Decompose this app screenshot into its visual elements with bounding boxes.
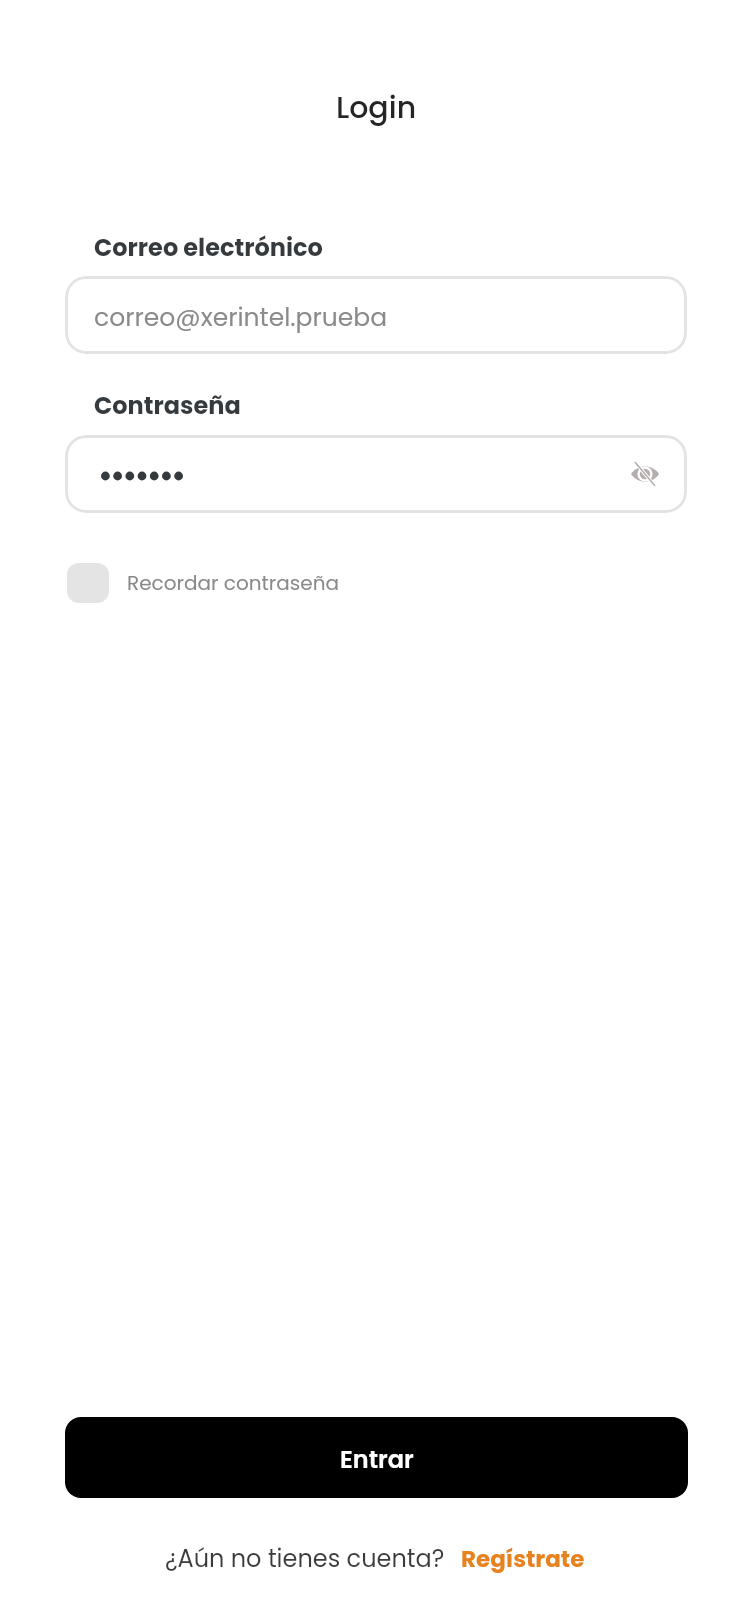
button[interactable]: correo@xerintel.prueba: [65, 276, 687, 354]
staticText: Correo electrónico: [94, 231, 323, 265]
button[interactable]: Mostrar contraseña: [65, 435, 687, 513]
staticText: Login: [1, 87, 750, 129]
button[interactable]: Mostrar contraseña: [623, 452, 667, 496]
staticText: Contraseña: [94, 389, 241, 423]
staticText: correo@xerintel.prueba: [94, 300, 388, 335]
staticText: Recordar contraseña: [127, 569, 339, 597]
staticText: ¿Aún no tienes cuenta?: [165, 1542, 445, 1576]
staticText: Entrar: [340, 1443, 414, 1477]
button[interactable]: Regístrate: [461, 1543, 585, 1575]
button[interactable]: Recordar contraseña: [67, 563, 339, 603]
button[interactable]: Entrar: [65, 1417, 688, 1498]
